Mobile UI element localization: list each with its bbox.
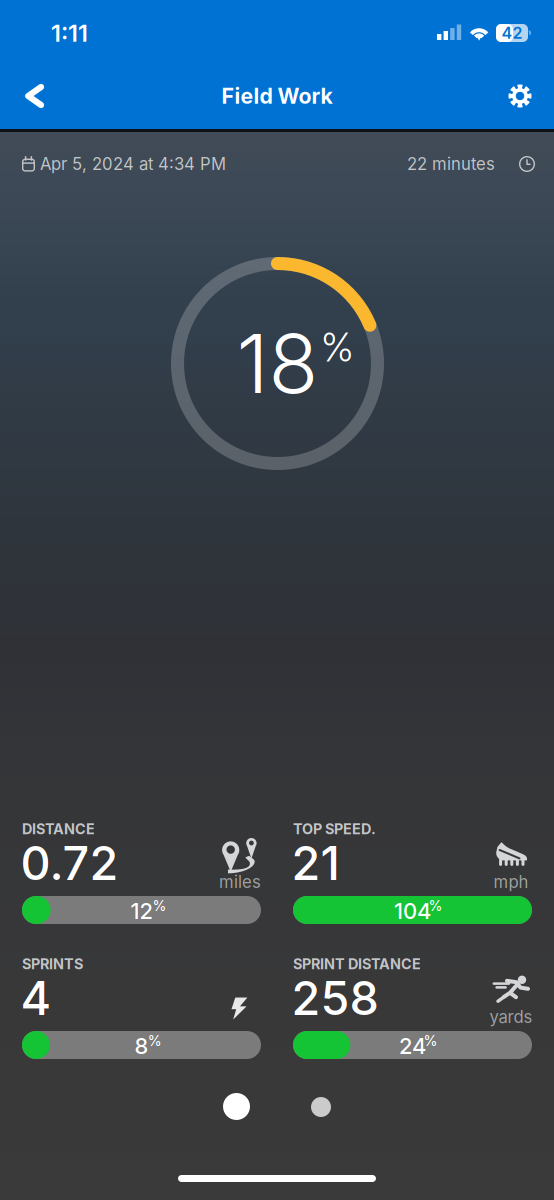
staticText: % <box>321 324 354 371</box>
staticText: % <box>428 897 442 914</box>
staticText: yards <box>489 1007 532 1027</box>
staticText: % <box>153 897 167 914</box>
staticText: 18 <box>236 314 318 413</box>
staticText: SPRINTS <box>22 955 83 973</box>
staticText: Apr 5, 2024 at 4:34 PM <box>40 154 226 174</box>
staticText: TOP SPEED. <box>293 820 376 838</box>
staticText: mph <box>493 872 528 892</box>
staticText: 258 <box>291 970 378 1026</box>
staticText: 0.72 <box>20 835 118 891</box>
staticText: Field Work <box>221 83 332 109</box>
staticText: 104 <box>394 898 431 924</box>
staticText: % <box>424 1032 438 1049</box>
staticText: 1:11 <box>51 18 88 47</box>
staticText: miles <box>219 872 261 892</box>
staticText: 12 <box>130 898 152 924</box>
button[interactable]: Back <box>3 62 65 130</box>
staticText: 24 <box>399 1033 426 1059</box>
staticText: % <box>148 1032 162 1049</box>
staticText: DISTANCE <box>22 820 95 838</box>
button[interactable]: Page 2 <box>0 0 554 1200</box>
staticText: 42 <box>501 23 522 43</box>
staticText: SPRINT DISTANCE <box>293 955 421 973</box>
staticText: 4 <box>20 970 51 1026</box>
button[interactable]: Settings <box>489 62 551 130</box>
staticText: 21 <box>291 835 339 891</box>
staticText: 22 minutes <box>407 154 495 174</box>
staticText: 8 <box>134 1033 148 1059</box>
button[interactable]: Page 1 <box>0 0 554 1200</box>
